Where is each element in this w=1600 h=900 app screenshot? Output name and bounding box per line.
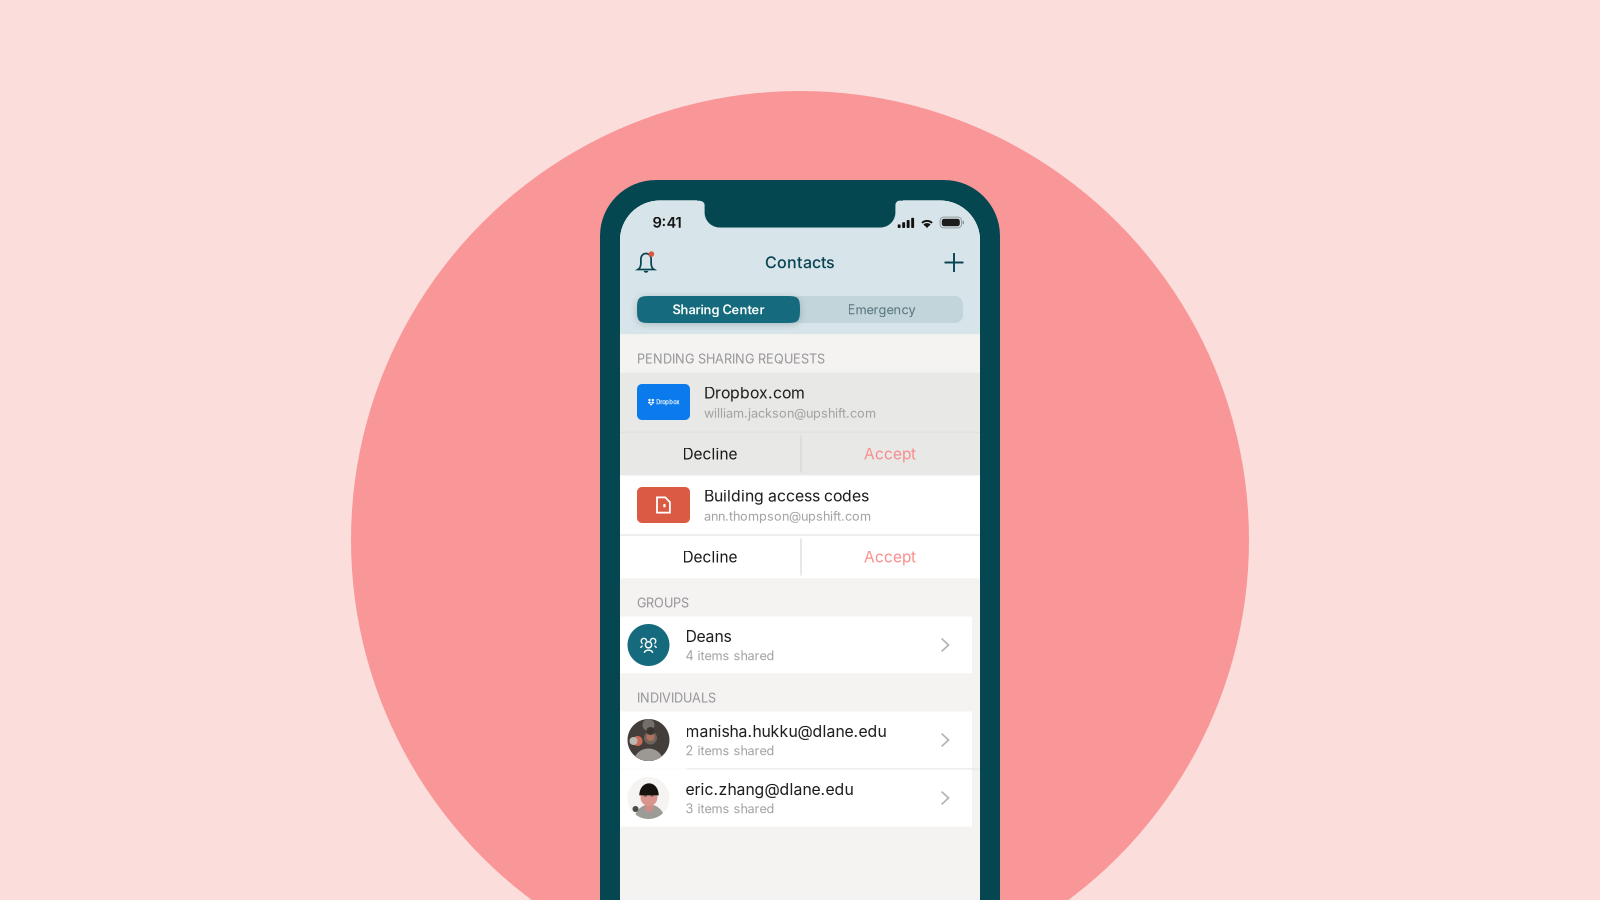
staticText: william.jackson@upshift.com <box>704 405 876 421</box>
button[interactable]: Decline <box>620 535 800 578</box>
staticText: GROUPS <box>637 595 689 610</box>
staticText: Decline <box>682 548 737 566</box>
staticText: Accept <box>864 445 916 463</box>
staticText: Building access codes <box>704 486 869 505</box>
staticText: PENDING SHARING REQUESTS <box>637 351 825 366</box>
button[interactable]: Accept <box>800 535 980 578</box>
staticText: eric.zhang@dlane.edu <box>685 780 853 799</box>
staticText: INDIVIDUALS <box>637 690 716 705</box>
staticText: 4 items shared <box>685 648 774 663</box>
staticText: Dropbox <box>656 399 679 406</box>
button[interactable]: Decline <box>620 432 800 475</box>
button[interactable]: Deans <box>620 616 980 673</box>
staticText: Contacts <box>765 253 835 272</box>
staticText: ann.thompson@upshift.com <box>704 508 871 524</box>
staticText: Accept <box>864 548 916 566</box>
staticText: 3 items shared <box>685 801 774 816</box>
staticText: Sharing Center <box>672 302 764 317</box>
staticText: manisha.hukku@dlane.edu <box>685 722 886 741</box>
button[interactable]: Add contact <box>933 242 975 282</box>
button[interactable]: eric.zhang@dlane.edu <box>620 769 980 826</box>
button[interactable]: manisha.hukku@dlane.edu <box>620 711 980 768</box>
staticText: Decline <box>682 445 737 463</box>
staticText: Deans <box>685 627 731 646</box>
button[interactable]: Emergency <box>800 296 963 323</box>
button[interactable]: Accept <box>800 432 980 475</box>
staticText: Emergency <box>847 302 915 317</box>
button[interactable]: Sharing Center <box>637 296 800 323</box>
staticText: 2 items shared <box>685 743 774 758</box>
staticText: 9:41 <box>652 214 681 231</box>
button[interactable]: Notifications <box>625 242 667 282</box>
staticText: Dropbox.com <box>704 383 805 402</box>
